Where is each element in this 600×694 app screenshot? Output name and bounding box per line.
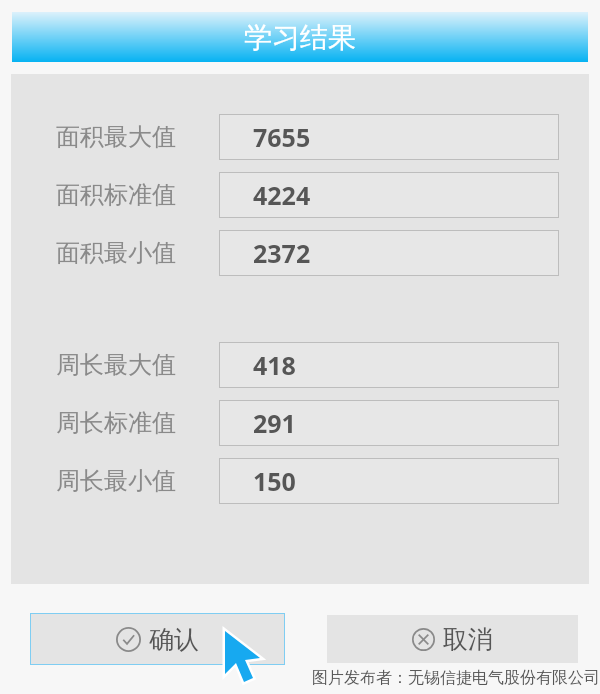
staticText: 图片发布者：无锡信捷电气股份有限公司: [312, 668, 600, 688]
button[interactable]: 取消: [327, 615, 578, 663]
staticText: 周长标准值: [56, 408, 176, 438]
staticText: 面积标准值: [56, 180, 176, 210]
button[interactable]: 2372: [219, 230, 559, 276]
staticText: 4224: [253, 178, 311, 212]
staticText: 418: [253, 348, 296, 382]
staticText: 150: [253, 464, 296, 498]
staticText: 面积最小值: [56, 238, 176, 268]
staticText: 2372: [253, 236, 311, 270]
staticText: 291: [253, 406, 296, 440]
other: Pointer: [220, 626, 280, 694]
staticText: 取消: [443, 624, 493, 655]
button[interactable]: 确认: [30, 613, 285, 665]
button[interactable]: 7655: [219, 114, 559, 160]
staticText: 周长最小值: [56, 466, 176, 496]
staticText: 面积最大值: [56, 122, 176, 152]
button[interactable]: 291: [219, 400, 559, 446]
button[interactable]: 418: [219, 342, 559, 388]
staticText: 学习结果: [244, 20, 356, 55]
button[interactable]: 4224: [219, 172, 559, 218]
staticText: 周长最大值: [56, 350, 176, 380]
button[interactable]: 150: [219, 458, 559, 504]
staticText: 7655: [253, 120, 311, 154]
staticText: 确认: [149, 624, 199, 655]
